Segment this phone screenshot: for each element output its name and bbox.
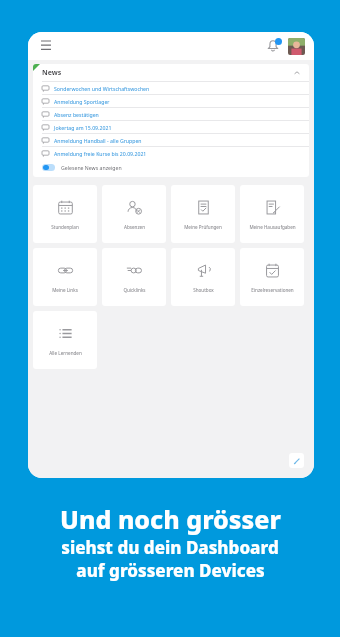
staticText: Einzelreservationen: [251, 287, 294, 293]
staticText: Alle Lernenden: [49, 350, 82, 356]
staticText: Shoutbox: [193, 287, 214, 293]
button[interactable]: Alle Lernenden: [33, 311, 97, 369]
button[interactable]: Einzelreservationen: [240, 248, 304, 306]
staticText: Absenzen: [124, 224, 145, 230]
button[interactable]: Quicklinks: [102, 248, 166, 306]
button[interactable]: Meine Hausaufgaben: [240, 185, 304, 243]
staticText: Anmeldung Sportlager: [54, 98, 110, 105]
button[interactable]: Anmeldung Sportlager: [33, 95, 309, 107]
staticText: Meine Hausaufgaben: [249, 224, 296, 230]
button[interactable]: Gelesene News anzeigen: [33, 159, 309, 175]
button[interactable]: Shoutbox: [171, 248, 235, 306]
staticText: Anmeldung Handball - alle Gruppen: [54, 137, 142, 144]
button[interactable]: Anmeldung freie Kurse bis 20.09.2021: [33, 147, 309, 159]
staticText: Und noch grösser: [60, 502, 281, 536]
staticText: Jokertag am 15.09.2021: [54, 124, 112, 131]
staticText: Gelesene News anzeigen: [61, 164, 122, 171]
staticText: Sonderwochen und Wirtschaftswochen: [54, 85, 150, 92]
staticText: Quicklinks: [123, 287, 146, 293]
button[interactable]: Sonderwochen und Wirtschaftswochen: [33, 82, 309, 94]
button[interactable]: Stundenplan: [33, 185, 97, 243]
staticText: Anmeldung freie Kurse bis 20.09.2021: [54, 150, 147, 157]
button[interactable]: Menu: [37, 37, 55, 55]
staticText: Meine Prüfungen: [184, 224, 222, 230]
button[interactable]: Absenzen: [102, 185, 166, 243]
button[interactable]: Jokertag am 15.09.2021: [33, 121, 309, 133]
staticText: Stundenplan: [51, 224, 79, 230]
button[interactable]: Meine Prüfungen: [171, 185, 235, 243]
button[interactable]: News: [33, 64, 309, 81]
button[interactable]: Notifications: [263, 36, 283, 56]
staticText: siehst du dein Dashboard: [61, 536, 279, 559]
button[interactable]: Meine Links: [33, 248, 97, 306]
staticText: Absenz bestätigen: [54, 111, 99, 118]
staticText: auf grösseren Devices: [76, 559, 265, 582]
button[interactable]: Edit dashboard: [289, 453, 304, 468]
staticText: Meine Links: [52, 287, 78, 293]
staticText: News: [42, 68, 62, 78]
button[interactable]: Anmeldung Handball - alle Gruppen: [33, 134, 309, 146]
button[interactable]: Absenz bestätigen: [33, 108, 309, 120]
button[interactable]: Profile: [288, 38, 305, 55]
